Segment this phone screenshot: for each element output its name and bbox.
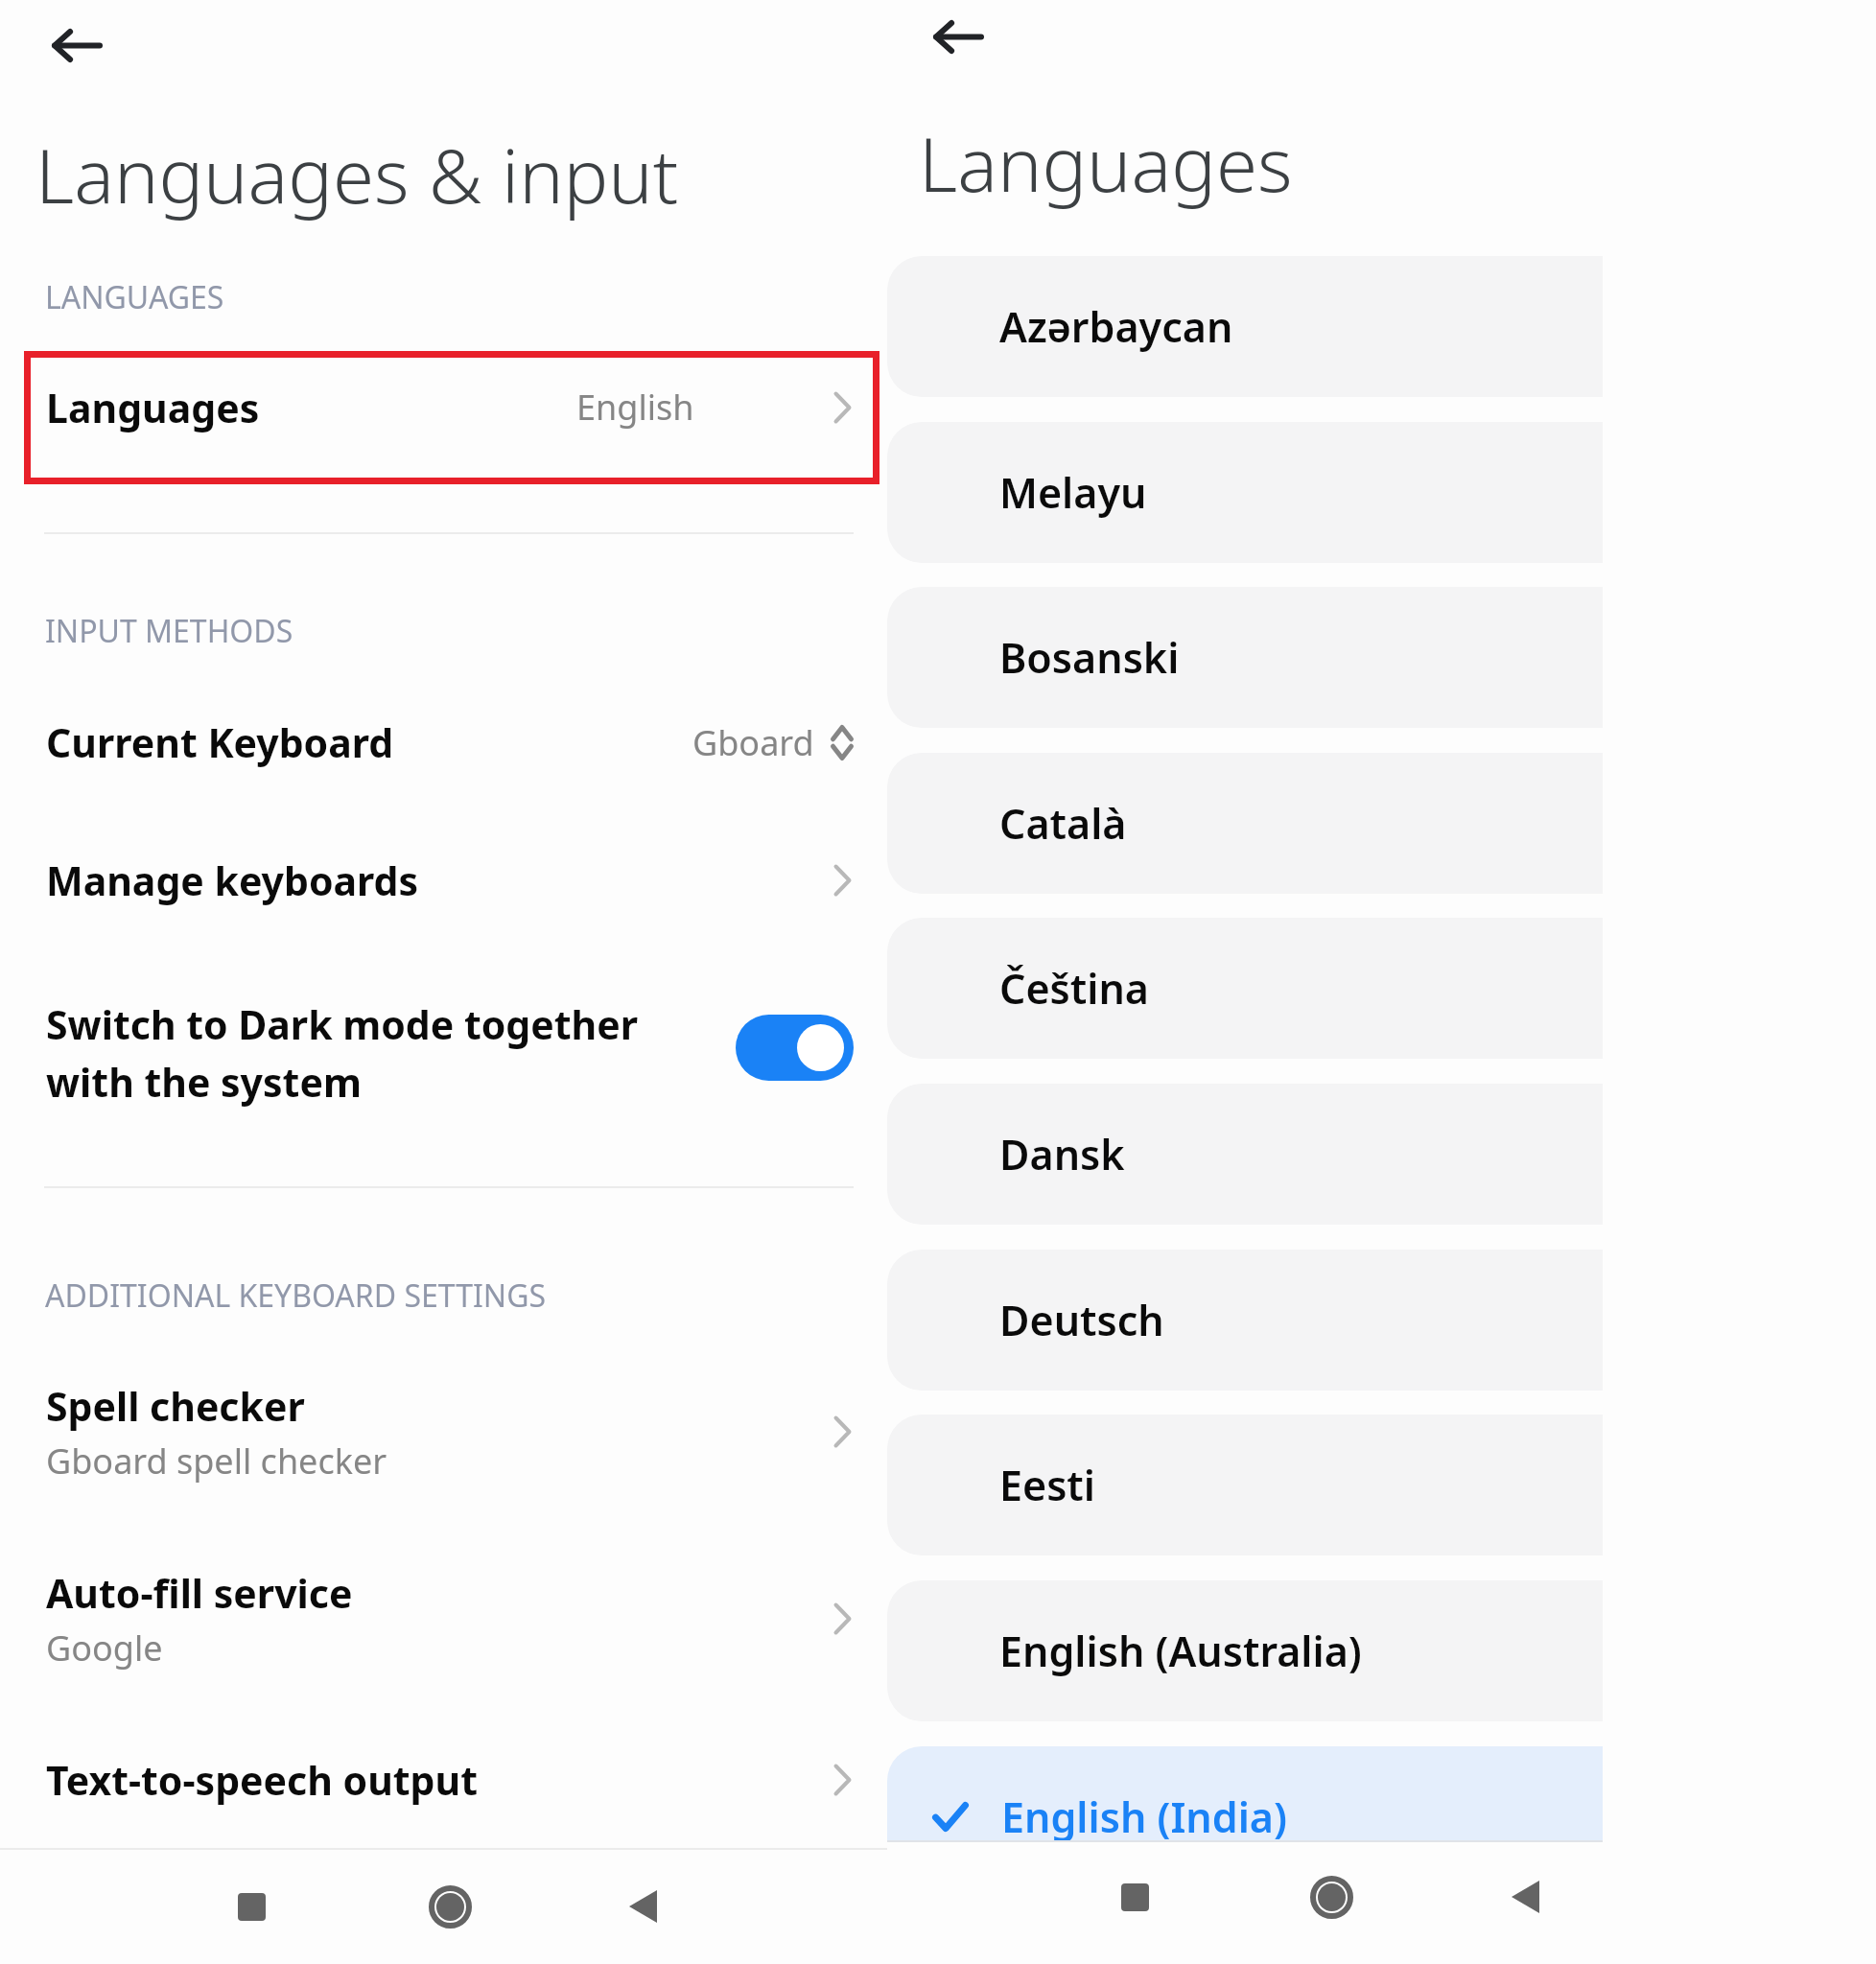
staticText: Bosanski <box>999 629 1180 686</box>
staticText: Auto-fill service <box>46 1566 353 1620</box>
staticText: INPUT METHODS <box>45 610 293 652</box>
button[interactable]: Melayu <box>887 422 1603 563</box>
staticText: LANGUAGES <box>45 276 224 318</box>
button[interactable]: Deutsch <box>887 1250 1603 1391</box>
button[interactable]: Home <box>411 1868 488 1945</box>
button[interactable]: Eesti <box>887 1415 1603 1555</box>
staticText: Manage keyboards <box>46 853 419 907</box>
staticText: Català <box>999 795 1127 852</box>
staticText: English <box>576 384 694 431</box>
button[interactable]: Català <box>887 753 1603 894</box>
staticText: Eesti <box>999 1457 1095 1513</box>
staticText: Languages <box>46 381 260 434</box>
staticText: Text-to-speech output <box>46 1753 478 1807</box>
staticText: Switch to Dark mode together with the sy… <box>46 997 638 1109</box>
button[interactable]: Languages <box>0 341 887 473</box>
staticText: Languages & input <box>35 124 679 225</box>
button[interactable]: Back <box>1487 1859 1563 1935</box>
staticText: Azərbaycan <box>999 298 1233 355</box>
button[interactable]: Auto-fill service <box>0 1546 887 1692</box>
staticText: English (Australia) <box>999 1623 1362 1679</box>
button[interactable]: Switch to Dark mode together with the sy… <box>0 969 887 1136</box>
staticText: Current Keyboard <box>46 715 394 769</box>
staticText: Gboard spell checker <box>46 1438 387 1485</box>
button[interactable]: Toggle dark mode <box>736 1015 854 1081</box>
staticText: Spell checker <box>46 1379 305 1433</box>
button[interactable]: English (Australia) <box>887 1580 1603 1721</box>
button[interactable]: Spell checker <box>0 1359 887 1505</box>
button[interactable]: Current Keyboard <box>0 677 887 807</box>
staticText: Melayu <box>999 464 1147 521</box>
button[interactable]: Dansk <box>887 1084 1603 1225</box>
staticText: English (India) <box>1001 1789 1287 1840</box>
button[interactable]: Recent apps <box>1096 1859 1173 1935</box>
button[interactable]: Manage keyboards <box>0 815 887 946</box>
staticText: Deutsch <box>999 1292 1164 1348</box>
staticText: Čeština <box>999 960 1150 1017</box>
button[interactable]: English (India) <box>887 1746 1603 1840</box>
button[interactable]: Text-to-speech output <box>0 1715 887 1845</box>
button[interactable]: Recent apps <box>213 1868 290 1945</box>
button[interactable]: Back <box>925 3 992 70</box>
button[interactable]: Bosanski <box>887 587 1603 728</box>
button[interactable]: Back <box>43 12 110 79</box>
staticText: Dansk <box>999 1126 1125 1182</box>
button[interactable]: Azərbaycan <box>887 256 1603 397</box>
button[interactable]: Back <box>604 1868 681 1945</box>
staticText: ADDITIONAL KEYBOARD SETTINGS <box>45 1274 547 1317</box>
staticText: Languages <box>919 112 1293 214</box>
staticText: Gboard <box>692 719 814 766</box>
staticText: Google <box>46 1625 163 1672</box>
button[interactable]: Čeština <box>887 918 1603 1059</box>
button[interactable]: Home <box>1293 1859 1370 1935</box>
